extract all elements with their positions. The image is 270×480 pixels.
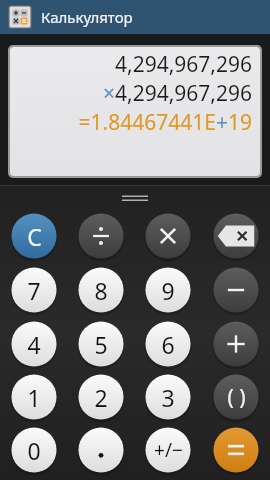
button[interactable]: 2 (77, 373, 125, 421)
staticText: 1 (27, 382, 41, 413)
staticText: Калькулятор (41, 7, 133, 27)
staticText: 5 (94, 329, 108, 360)
button[interactable]: Plus (212, 320, 260, 368)
button[interactable]: 7 (10, 266, 58, 314)
button[interactable]: Parentheses (212, 373, 260, 421)
button[interactable]: Decimal point (77, 426, 125, 474)
button[interactable]: Minus (212, 266, 260, 314)
button[interactable]: 4,294,967,296 (10, 47, 260, 176)
button[interactable]: 9 (144, 266, 192, 314)
staticText: 7 (27, 275, 41, 306)
staticText: 2 (94, 382, 108, 413)
button[interactable]: Divide (77, 212, 125, 260)
staticText: ×4,294,967,296 (102, 79, 252, 108)
staticText: +/− (154, 437, 183, 463)
staticText: =1.84467441E+19 (78, 108, 252, 137)
button[interactable]: Equals (212, 426, 260, 474)
staticText: 4,294,967,296 (114, 50, 252, 79)
staticText: 0 (27, 435, 41, 466)
button[interactable]: 0 (10, 426, 58, 474)
staticText: ( ) (227, 383, 246, 412)
button[interactable]: Калькулятор (0, 0, 270, 34)
button[interactable]: 4 (10, 320, 58, 368)
button[interactable]: 8 (77, 266, 125, 314)
button[interactable]: Drag handle (0, 186, 270, 209)
button[interactable]: 5 (77, 320, 125, 368)
button[interactable]: Backspace (212, 212, 260, 260)
staticText: 4 (27, 329, 41, 360)
button[interactable]: 3 (144, 373, 192, 421)
staticText: 6 (161, 329, 175, 360)
button[interactable]: C (10, 212, 58, 260)
staticText: 9 (161, 275, 175, 306)
button[interactable]: Multiply (144, 212, 192, 260)
button[interactable]: 6 (144, 320, 192, 368)
staticText: 8 (94, 275, 108, 306)
button[interactable]: Plus minus (144, 426, 192, 474)
staticText: 3 (161, 382, 175, 413)
staticText: C (27, 221, 42, 252)
button[interactable]: 1 (10, 373, 58, 421)
